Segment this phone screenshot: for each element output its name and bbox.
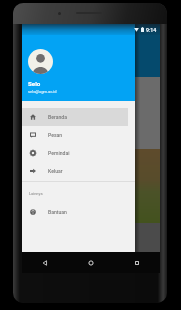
staticText: Keluar — [48, 168, 63, 174]
staticText: selo@ugm.ac.id — [28, 89, 57, 94]
staticText: Pemindai — [48, 150, 70, 156]
staticText: Beranda — [48, 114, 67, 120]
button[interactable]: Back — [22, 252, 68, 273]
button[interactable]: Home — [68, 252, 114, 273]
staticText: Lainnya — [29, 191, 43, 196]
staticText: Selo — [28, 80, 41, 87]
button[interactable]: Recent apps — [114, 252, 160, 273]
staticText: Pesan — [48, 132, 63, 138]
button[interactable]: Bantuan — [22, 203, 135, 221]
button[interactable]: Beranda — [22, 108, 135, 126]
button[interactable]: Keluar — [22, 162, 135, 180]
button[interactable]: Pemindai — [22, 144, 135, 162]
staticText: Bantuan — [48, 209, 67, 215]
button[interactable]: Pesan — [22, 126, 135, 144]
staticText: 9:14 — [146, 27, 157, 33]
